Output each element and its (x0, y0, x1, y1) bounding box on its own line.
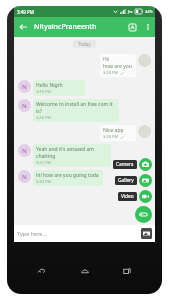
button[interactable]: Hii (100, 54, 136, 77)
staticText: N (22, 83, 27, 91)
button[interactable]: Avatar (138, 54, 151, 67)
button[interactable]: Contact info (123, 18, 141, 36)
button[interactable]: Nice app (100, 125, 136, 141)
staticText: 3:28 PM (103, 134, 119, 139)
staticText: Gallery (118, 177, 134, 184)
button[interactable]: Hello Nigth (33, 80, 85, 96)
button[interactable]: Gallery (115, 174, 152, 187)
staticText: Video (121, 193, 134, 200)
button[interactable]: Camera (113, 158, 152, 171)
staticText: 44% (145, 9, 153, 14)
button[interactable]: Type here... (17, 225, 141, 242)
button[interactable]: Avatar (18, 170, 31, 183)
button[interactable]: More options (141, 20, 155, 34)
button[interactable]: Home (77, 263, 93, 279)
button[interactable]: Recents (119, 263, 135, 279)
staticText: how are you (103, 63, 132, 70)
staticText: NityaincPraneenth (34, 22, 123, 32)
button[interactable]: Video (118, 190, 152, 203)
staticText: Nice app (103, 127, 124, 134)
staticText: N (22, 147, 27, 155)
button[interactable]: Welcome to install an free com it is? (33, 99, 119, 122)
button[interactable]: Avatar (18, 80, 31, 93)
staticText: 3:31 PM (36, 160, 52, 165)
staticText: Welcome to install an free com it is? (36, 101, 116, 115)
staticText: Today (78, 41, 91, 47)
staticText: 3:26 PM (36, 115, 52, 120)
staticText: 3:34 PM (36, 179, 52, 184)
button[interactable]: Send image (141, 228, 152, 239)
button[interactable]: Avatar (18, 99, 31, 112)
staticText: N (22, 173, 27, 181)
staticText: Yeah and it's amazed am chatting (36, 146, 108, 160)
staticText: 3:49 PM (17, 9, 34, 15)
button[interactable]: Back (14, 18, 32, 36)
button[interactable]: hii how are you going toda (33, 170, 103, 186)
staticText: 3:26 PM (36, 89, 52, 94)
staticText: Hello Nigth (36, 82, 63, 89)
button[interactable]: Attach (135, 206, 152, 223)
button[interactable]: Back (34, 263, 50, 279)
staticText: Type here... (17, 230, 47, 237)
button[interactable]: Yeah and it's amazed am chatting (33, 144, 111, 167)
staticText: Camera (116, 161, 134, 168)
staticText: hii how are you going toda (36, 172, 99, 179)
button[interactable]: Avatar (18, 144, 31, 157)
staticText: 3:26 PM (103, 70, 119, 75)
button[interactable]: Avatar (138, 125, 151, 138)
staticText: Jio (128, 9, 133, 14)
staticText: Hii (103, 56, 110, 63)
staticText: N (22, 102, 27, 110)
